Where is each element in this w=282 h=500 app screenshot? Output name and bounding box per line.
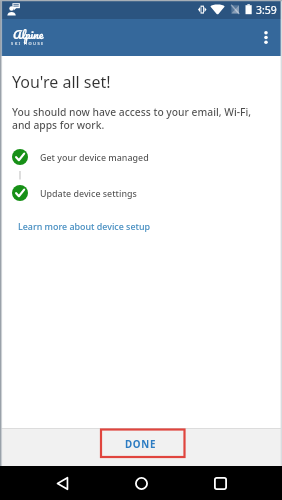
staticText: DONE — [125, 438, 157, 451]
button[interactable]: Home — [124, 466, 158, 500]
button[interactable]: Back — [45, 466, 79, 500]
staticText: Alpine — [13, 25, 44, 44]
button[interactable]: DONE — [107, 430, 175, 459]
button[interactable]: Recents — [203, 466, 237, 500]
staticText: Learn more about device setup — [18, 220, 150, 232]
staticText: You should now have access to your email… — [12, 105, 251, 132]
button[interactable]: More options — [249, 21, 282, 54]
staticText: 3:59 — [256, 3, 277, 17]
staticText: SKI HOUSE — [11, 41, 45, 46]
button[interactable]: Learn more about device setup — [0, 220, 150, 232]
staticText: Get your device managed — [40, 151, 149, 163]
staticText: You're all set! — [12, 71, 111, 93]
staticText: Update device settings — [40, 187, 137, 199]
